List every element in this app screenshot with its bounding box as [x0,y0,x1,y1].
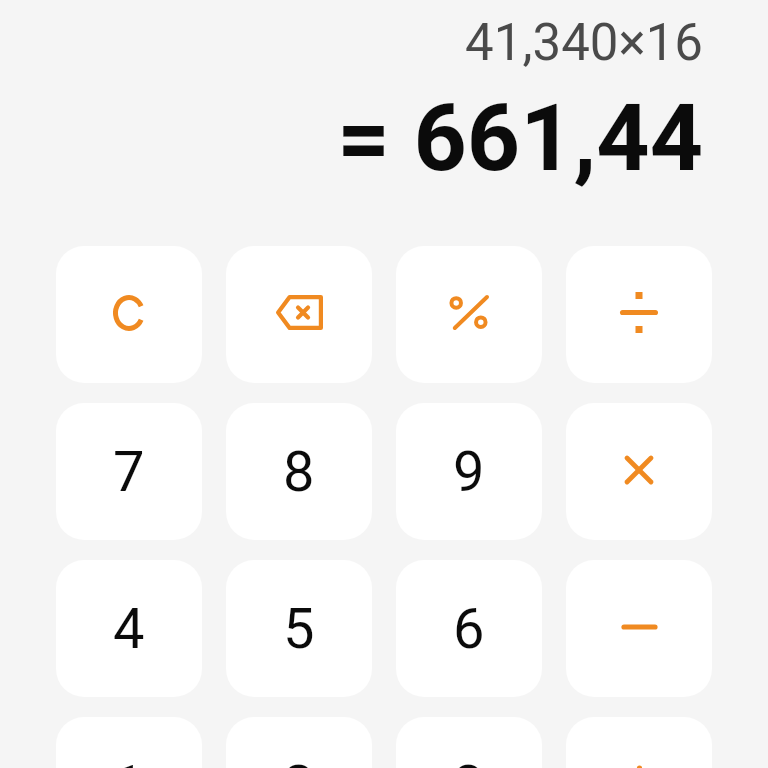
button[interactable]: 6 [396,560,542,697]
button[interactable]: Divide [566,246,712,383]
staticText: 6 [453,596,485,662]
staticText: 4 [113,596,145,662]
staticText: 3 [453,753,485,768]
button[interactable]: 7 [56,403,202,540]
button[interactable]: 3 [396,717,542,768]
button[interactable]: Backspace [226,246,372,383]
button[interactable]: 8 [226,403,372,540]
button[interactable]: 5 [226,560,372,697]
staticText: 2 [283,753,315,768]
button[interactable]: Minus [566,560,712,697]
staticText: 41,340×16 [465,13,703,73]
staticText: 5 [283,596,315,662]
button[interactable]: 2 [226,717,372,768]
button[interactable]: 9 [396,403,542,540]
staticText: 7 [113,439,145,505]
button[interactable]: 4 [56,560,202,697]
button[interactable]: Plus [566,717,712,768]
staticText: 8 [283,439,315,505]
button[interactable]: Clear [56,246,202,383]
button[interactable]: 1 [56,717,202,768]
button[interactable]: Percent [396,246,542,383]
button[interactable]: Multiply [566,403,712,540]
staticText: 9 [453,439,485,505]
staticText: = 661,44 [337,84,703,193]
staticText: 1 [113,753,145,768]
